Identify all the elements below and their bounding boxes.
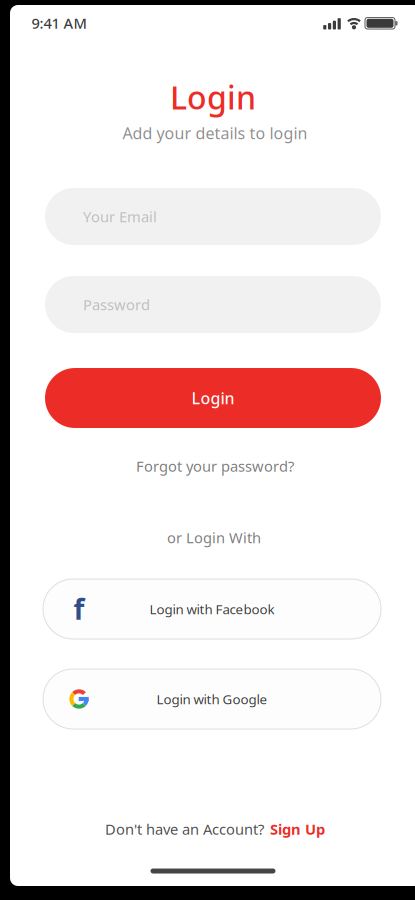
staticText: f	[73, 590, 84, 628]
button[interactable]: Your Email	[45, 188, 381, 245]
staticText: Login with Google	[156, 690, 267, 708]
staticText: Don't have an Account?	[105, 819, 264, 839]
button[interactable]: Forgot your password?	[136, 456, 294, 476]
button[interactable]: Password	[45, 276, 381, 333]
staticText: Sign Up	[270, 819, 325, 839]
staticText: 9:41 AM	[31, 13, 86, 33]
staticText: Password	[83, 295, 150, 314]
staticText: Login with Facebook	[149, 600, 274, 618]
staticText: Forgot your password?	[136, 456, 294, 476]
staticText: Your Email	[83, 207, 157, 226]
button[interactable]: Login	[45, 368, 381, 428]
staticText: Add your details to login	[122, 122, 307, 144]
button[interactable]: Sign Up	[270, 819, 325, 839]
button[interactable]: Login with Facebook	[43, 579, 381, 639]
button[interactable]: Login with Google	[43, 669, 381, 729]
staticText: or Login With	[167, 528, 261, 547]
staticText: Login	[191, 387, 234, 409]
staticText: Login	[170, 76, 256, 118]
